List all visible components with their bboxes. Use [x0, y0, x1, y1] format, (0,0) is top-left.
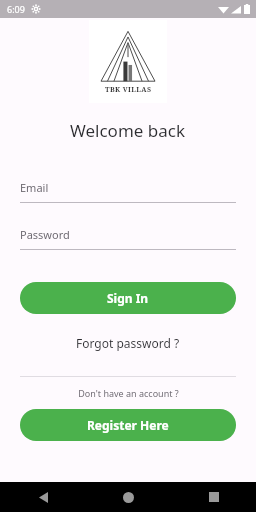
staticText: Don't have an account ? [78, 387, 179, 399]
button[interactable]: Register Here [20, 409, 236, 441]
staticText: Sign In [107, 290, 149, 306]
staticText: Welcome back [70, 119, 186, 142]
staticText: TBK VILLAS [105, 85, 152, 95]
button[interactable]: Sign In [20, 282, 236, 314]
button[interactable]: Forgot password ? [64, 332, 192, 354]
staticText: Email [20, 180, 49, 195]
button[interactable]: Password [20, 227, 236, 250]
button[interactable]: Email [20, 180, 236, 203]
staticText: 6:09 [7, 3, 25, 15]
staticText: Register Here [87, 417, 169, 433]
staticText: Forgot password ? [76, 335, 180, 351]
button[interactable]: Home [86, 482, 171, 512]
button[interactable]: Recent apps [171, 482, 256, 512]
staticText: Password [20, 227, 70, 242]
button[interactable]: Back [0, 482, 86, 512]
